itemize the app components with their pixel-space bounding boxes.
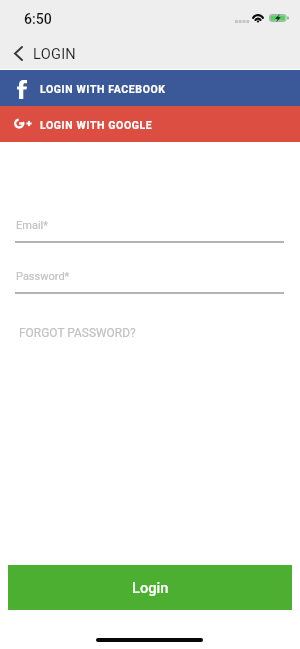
button[interactable]: FORGOT PASSWORD? [0, 322, 300, 344]
button[interactable]: Email* [0, 214, 300, 244]
button[interactable]: Password* [0, 265, 300, 295]
button[interactable]: Login [8, 565, 292, 610]
staticText: Email* [16, 219, 48, 232]
button[interactable]: LOGIN WITH GOOGLE [0, 106, 300, 142]
staticText: FORGOT PASSWORD? [19, 326, 136, 340]
staticText: 6:50 [24, 11, 52, 28]
staticText: LOGIN WITH GOOGLE [40, 119, 153, 131]
button[interactable]: LOGIN WITH FACEBOOK [0, 70, 300, 106]
button[interactable]: Back [5, 42, 31, 64]
staticText: LOGIN WITH FACEBOOK [40, 83, 166, 95]
staticText: Login [132, 579, 169, 596]
staticText: Password* [16, 270, 70, 283]
staticText: LOGIN [33, 45, 77, 62]
